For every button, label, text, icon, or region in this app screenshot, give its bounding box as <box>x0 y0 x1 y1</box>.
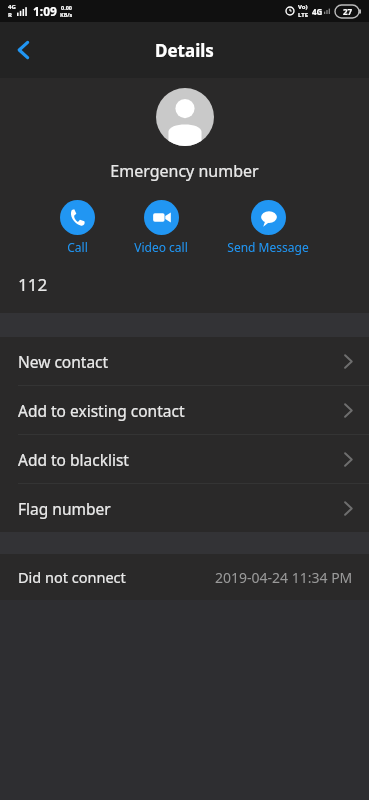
button[interactable]: Video call <box>132 200 190 255</box>
button[interactable]: Back <box>0 26 48 74</box>
staticText: Vo) <box>298 3 308 11</box>
button[interactable]: 112 <box>0 255 369 313</box>
staticText: KB/s <box>60 11 73 18</box>
staticText: 0.00 <box>61 4 72 11</box>
staticText: Flag number <box>18 498 344 519</box>
button[interactable]: Add to blacklist <box>0 435 369 483</box>
staticText: 2019-04-24 11:34 PM <box>215 568 353 587</box>
button[interactable]: Add to existing contact <box>0 386 369 434</box>
staticText: Emergency number <box>110 160 259 182</box>
staticText: Call <box>67 239 88 255</box>
staticText: R <box>8 11 12 19</box>
staticText: LTE <box>298 11 309 19</box>
button[interactable]: Call <box>58 200 97 255</box>
staticText: Video call <box>134 239 188 255</box>
button[interactable]: Flag number <box>0 484 369 532</box>
button[interactable]: New contact <box>0 337 369 385</box>
button[interactable]: Send Message <box>225 200 311 255</box>
staticText: 4G <box>8 3 16 11</box>
staticText: 112 <box>18 273 48 296</box>
staticText: New contact <box>18 351 344 372</box>
staticText: Send Message <box>227 239 309 255</box>
button[interactable]: Did not connect <box>0 554 369 600</box>
staticText: Details <box>155 39 214 62</box>
staticText: Add to blacklist <box>18 449 344 470</box>
staticText: 4G <box>312 6 323 17</box>
staticText: Did not connect <box>18 567 126 587</box>
staticText: 1:09 <box>33 3 57 19</box>
staticText: 27 <box>343 6 353 17</box>
staticText: Add to existing contact <box>18 400 344 421</box>
